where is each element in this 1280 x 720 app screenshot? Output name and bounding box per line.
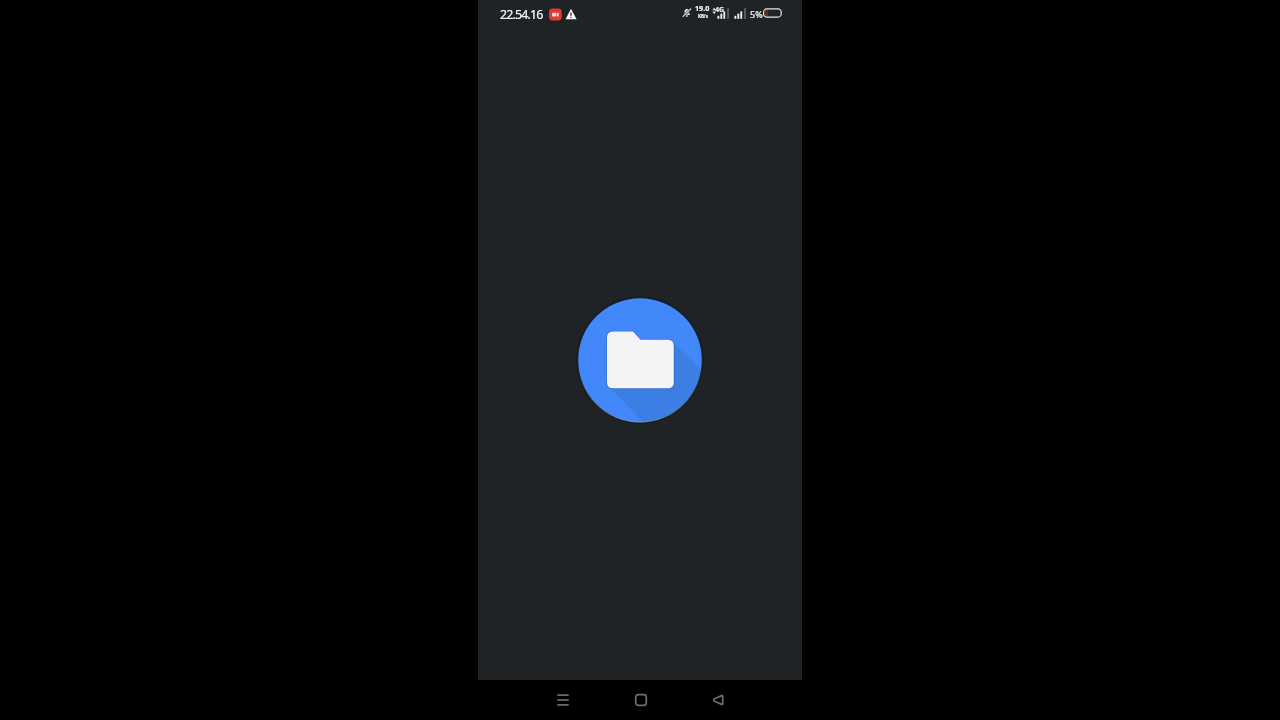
- staticText: 19.0: [695, 3, 710, 13]
- button[interactable]: Back: [702, 684, 734, 716]
- button[interactable]: Recent apps: [547, 684, 579, 716]
- staticText: 22.54.16: [500, 6, 543, 23]
- staticText: 4G: [715, 5, 725, 15]
- staticText: 5%: [750, 8, 763, 20]
- button[interactable]: Home: [625, 684, 657, 716]
- staticText: KB/s: [698, 13, 708, 19]
- button[interactable]: Files app icon: [575, 295, 705, 425]
